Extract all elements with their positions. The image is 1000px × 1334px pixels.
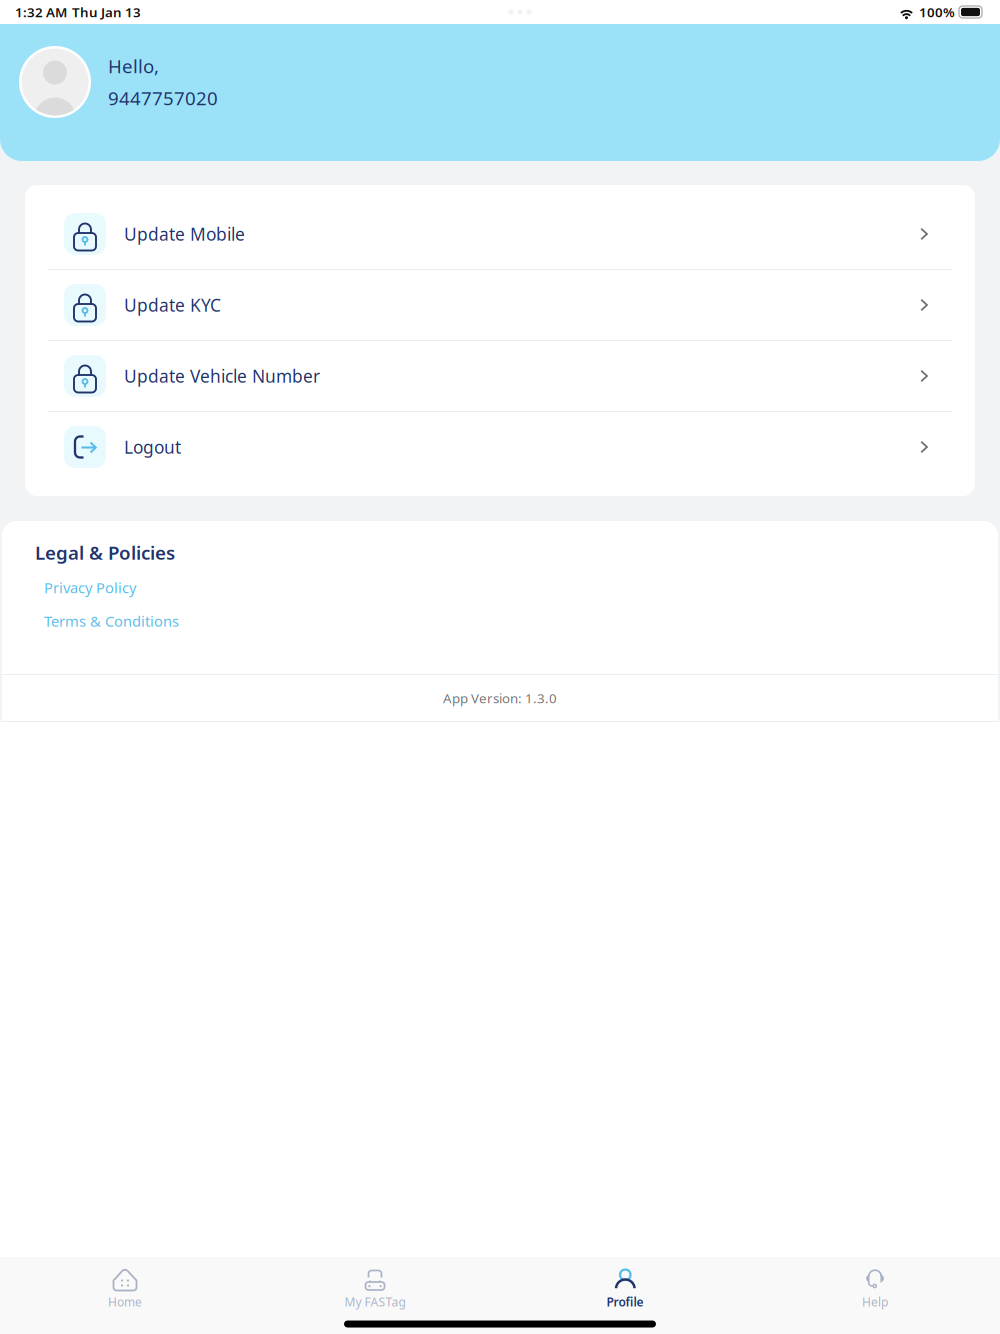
staticText: Update Vehicle Number: [124, 364, 320, 387]
staticText: Logout: [124, 435, 181, 458]
button[interactable]: Profile: [500, 1257, 750, 1314]
staticText: Home: [108, 1294, 142, 1310]
staticText: Hello,: [108, 54, 159, 78]
staticText: 100%: [919, 3, 955, 21]
staticText: Thu Jan 13: [72, 3, 141, 21]
button[interactable]: My FASTag: [250, 1257, 500, 1314]
staticText: App Version: 1.3.0: [443, 689, 557, 707]
staticText: Legal & Policies: [35, 540, 175, 565]
staticText: Update KYC: [124, 293, 221, 316]
button[interactable]: Terms & Conditions: [2, 597, 179, 631]
staticText: Terms & Conditions: [44, 611, 179, 631]
button[interactable]: Logout: [25, 412, 975, 482]
staticText: My FASTag: [344, 1294, 405, 1310]
button[interactable]: Help: [750, 1257, 1000, 1314]
staticText: 1:32 AM: [15, 3, 67, 21]
button[interactable]: Update KYC: [25, 270, 975, 340]
staticText: Help: [862, 1294, 888, 1310]
staticText: Privacy Policy: [44, 578, 136, 597]
button[interactable]: Privacy Policy: [2, 565, 136, 597]
button[interactable]: Home: [0, 1257, 250, 1314]
staticText: Update Mobile: [124, 222, 245, 245]
button[interactable]: Update Vehicle Number: [25, 341, 975, 411]
staticText: 9447757020: [108, 85, 218, 110]
button[interactable]: Update Mobile: [25, 199, 975, 269]
staticText: Profile: [606, 1294, 643, 1310]
